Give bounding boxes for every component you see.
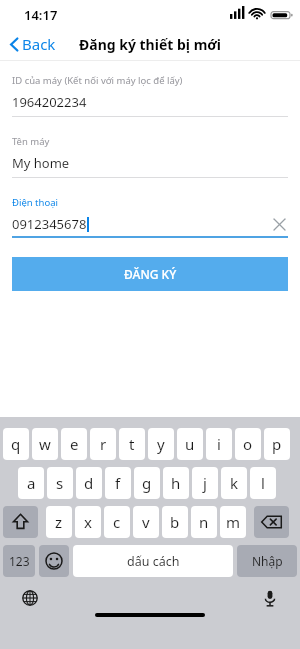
staticText: z [55, 512, 63, 532]
button[interactable]: v [133, 506, 159, 538]
staticText: f [115, 473, 121, 493]
staticText: u [185, 434, 195, 454]
staticText: s [56, 473, 64, 493]
button[interactable]: o [235, 428, 261, 460]
staticText: ĐĂNG KÝ [124, 266, 177, 282]
staticText: Điện thoại [12, 196, 58, 209]
staticText: a [27, 473, 36, 493]
staticText: k [230, 473, 239, 493]
button[interactable]: ĐĂNG KÝ [12, 257, 288, 291]
button[interactable]: k [221, 467, 247, 499]
staticText: 14:17 [24, 6, 58, 24]
button[interactable]: g [134, 467, 160, 499]
button[interactable]: j [192, 467, 218, 499]
staticText: i [217, 434, 221, 454]
button[interactable]: Tên máy [12, 135, 288, 178]
staticText: o [243, 434, 253, 454]
staticText: 123 [9, 553, 30, 569]
button[interactable]: m [220, 506, 246, 538]
button[interactable]: 123 [3, 545, 35, 577]
button[interactable]: Backspace [254, 506, 289, 538]
staticText: dấu cách [127, 553, 180, 570]
staticText: Nhập [252, 553, 283, 569]
staticText: j [203, 473, 207, 493]
button[interactable]: Voice input [258, 586, 282, 610]
staticText: 1964202234 [12, 93, 87, 111]
staticText: r [100, 434, 107, 454]
button[interactable]: Emoji [39, 545, 69, 577]
button[interactable]: c [104, 506, 130, 538]
staticText: w [39, 434, 51, 454]
button[interactable]: ID của máy (Kết nối với máy lọc để lấy) [12, 74, 288, 117]
button[interactable]: y [148, 428, 174, 460]
staticText: n [199, 512, 209, 532]
staticText: Tên máy [12, 135, 50, 148]
staticText: 0912345678 [12, 215, 87, 233]
button[interactable]: a [18, 467, 44, 499]
button[interactable]: r [90, 428, 116, 460]
button[interactable]: s [47, 467, 73, 499]
staticText: q [11, 434, 21, 454]
button[interactable]: p [264, 428, 290, 460]
button[interactable]: dấu cách [73, 545, 233, 577]
staticText: d [84, 473, 94, 493]
button[interactable]: n [191, 506, 217, 538]
button[interactable]: x [75, 506, 101, 538]
staticText: Đăng ký thiết bị mới [79, 35, 222, 54]
button[interactable]: u [177, 428, 203, 460]
staticText: ID của máy (Kết nối với máy lọc để lấy) [12, 74, 183, 87]
button[interactable]: h [163, 467, 189, 499]
button[interactable]: e [61, 428, 87, 460]
staticText: b [170, 512, 180, 532]
button[interactable]: t [119, 428, 145, 460]
staticText: My home [12, 154, 70, 172]
staticText: x [84, 512, 92, 532]
staticText: e [70, 434, 79, 454]
button[interactable]: w [32, 428, 58, 460]
button[interactable]: z [46, 506, 72, 538]
staticText: h [171, 473, 181, 493]
staticText: g [142, 473, 152, 493]
button[interactable]: l [250, 467, 276, 499]
button[interactable]: b [162, 506, 188, 538]
button[interactable]: Back [6, 30, 60, 58]
staticText: c [113, 512, 121, 532]
button[interactable]: i [206, 428, 232, 460]
button[interactable]: d [76, 467, 102, 499]
button[interactable]: f [105, 467, 131, 499]
button[interactable]: Shift [3, 506, 38, 538]
button[interactable]: q [3, 428, 29, 460]
staticText: y [157, 434, 165, 454]
staticText: l [261, 473, 265, 493]
staticText: m [226, 512, 241, 532]
button[interactable]: Nhập [237, 545, 297, 577]
button[interactable]: Change keyboard language [18, 586, 42, 610]
button[interactable]: Clear text [270, 215, 288, 233]
staticText: Back [22, 34, 56, 54]
button[interactable]: Điện thoại [12, 196, 288, 238]
staticText: v [142, 512, 150, 532]
staticText: t [129, 434, 135, 454]
staticText: p [272, 434, 282, 454]
